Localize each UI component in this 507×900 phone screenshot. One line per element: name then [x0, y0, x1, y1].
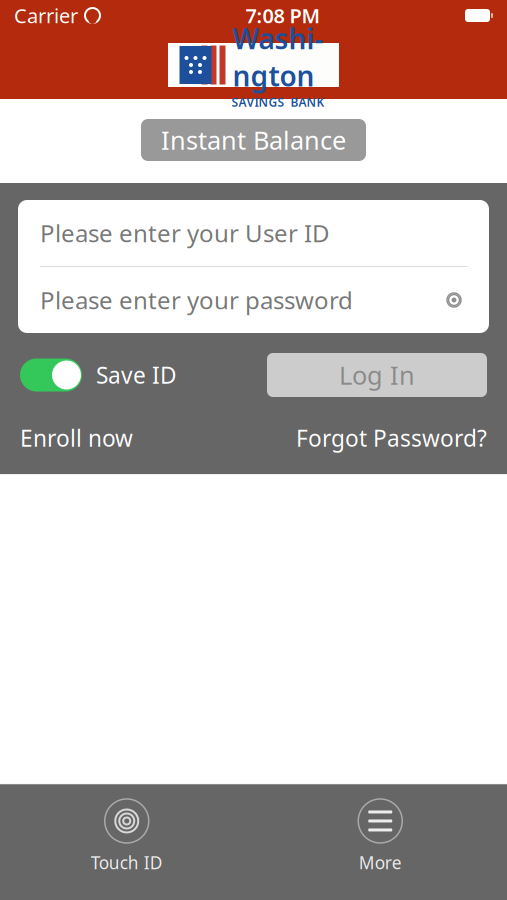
- staticText: Please enter your password: [40, 284, 353, 316]
- staticText: Carrier: [14, 2, 78, 29]
- button[interactable]: Please enter your password: [18, 267, 489, 333]
- button[interactable]: Enroll now: [20, 423, 133, 453]
- staticText: SAVINGS BANK: [231, 94, 324, 110]
- button[interactable]: Forgot Password?: [296, 423, 487, 453]
- staticText: Log In: [339, 358, 415, 392]
- staticText: 7:08 PM: [245, 2, 320, 29]
- staticText: Touch ID: [91, 851, 163, 874]
- button[interactable]: Instant Balance: [141, 119, 366, 161]
- button[interactable]: Save ID: [20, 358, 177, 391]
- staticText: Washington: [232, 20, 323, 94]
- staticText: Please enter your User ID: [40, 217, 330, 249]
- staticText: Save ID: [96, 360, 177, 390]
- staticText: Enroll now: [20, 423, 133, 453]
- button[interactable]: Log In: [267, 353, 487, 397]
- button[interactable]: Touch ID: [62, 798, 192, 874]
- staticText: Forgot Password?: [296, 423, 487, 453]
- button[interactable]: Please enter your User ID: [18, 200, 489, 266]
- staticText: Instant Balance: [161, 123, 346, 157]
- button[interactable]: More: [315, 798, 445, 874]
- staticText: More: [359, 851, 402, 874]
